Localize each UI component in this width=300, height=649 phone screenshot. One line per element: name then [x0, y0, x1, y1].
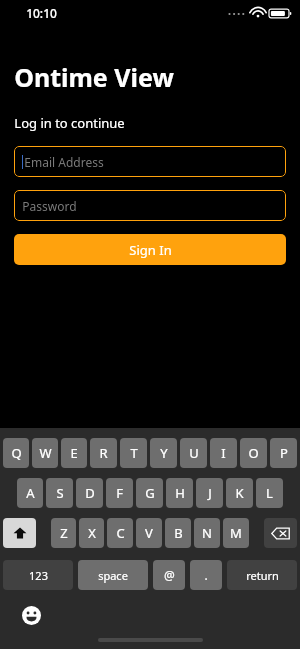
staticText: F [116, 484, 123, 502]
button[interactable]: F [106, 478, 133, 508]
staticText: Q [11, 444, 22, 462]
staticText: R [99, 444, 108, 462]
button[interactable]: V [136, 518, 162, 548]
staticText: W [39, 444, 52, 462]
button[interactable]: Password [14, 190, 286, 221]
button[interactable]: C [107, 518, 133, 548]
staticText: H [175, 484, 185, 502]
staticText: S [56, 484, 64, 502]
staticText: X [88, 524, 96, 542]
staticText: T [130, 444, 138, 462]
button[interactable]: S [46, 478, 73, 508]
staticText: Z [60, 524, 68, 542]
staticText: A [26, 484, 35, 502]
button[interactable]: B [165, 518, 191, 548]
button[interactable]: A [17, 478, 43, 508]
staticText: G [145, 484, 155, 502]
button[interactable]: Sign In [14, 234, 286, 265]
staticText: 123 [29, 568, 48, 583]
staticText: space [98, 568, 128, 583]
staticText: C [116, 524, 125, 542]
staticText: M [230, 524, 242, 542]
button[interactable]: H [166, 478, 193, 508]
button[interactable]: I [210, 438, 237, 468]
staticText: Y [160, 444, 168, 462]
button[interactable]: Z [51, 518, 76, 548]
button[interactable]: G [136, 478, 163, 508]
button[interactable]: E [61, 438, 87, 468]
staticText: E [70, 444, 78, 462]
button[interactable]: Emoji keyboard [22, 606, 41, 625]
button[interactable]: X [79, 518, 104, 548]
button[interactable]: D [76, 478, 103, 508]
staticText: Log in to continue [14, 114, 125, 132]
staticText: Password [22, 198, 77, 214]
button[interactable]: U [180, 438, 207, 468]
button[interactable]: Backspace [264, 518, 297, 548]
button[interactable]: Y [150, 438, 177, 468]
button[interactable]: Shift [3, 518, 36, 548]
staticText: O [248, 444, 259, 462]
staticText: N [202, 524, 212, 542]
staticText: J [208, 484, 212, 502]
button[interactable]: K [226, 478, 253, 508]
button[interactable]: N [194, 518, 220, 548]
staticText: 10:10 [26, 5, 57, 21]
button[interactable]: @ [153, 560, 185, 590]
staticText: U [189, 444, 199, 462]
button[interactable]: 123 [3, 560, 73, 590]
staticText: Ontime View [14, 60, 174, 94]
button[interactable]: space [78, 560, 148, 590]
staticText: K [235, 484, 244, 502]
button[interactable]: Email Address [14, 146, 286, 177]
button[interactable]: J [196, 478, 223, 508]
staticText: B [174, 524, 183, 542]
button[interactable]: O [240, 438, 267, 468]
button[interactable]: R [90, 438, 117, 468]
button[interactable]: P [270, 438, 297, 468]
button[interactable]: Q [3, 438, 29, 468]
button[interactable]: W [32, 438, 58, 468]
staticText: Email Address [24, 154, 104, 170]
staticText: L [266, 484, 273, 502]
staticText: V [145, 524, 153, 542]
staticText: return [246, 568, 279, 583]
staticText: I [221, 444, 226, 462]
staticText: P [280, 444, 288, 462]
button[interactable]: M [223, 518, 249, 548]
staticText: @ [164, 567, 175, 583]
staticText: . [204, 567, 208, 583]
staticText: Sign In [129, 241, 172, 259]
button[interactable]: L [256, 478, 283, 508]
button[interactable]: T [120, 438, 147, 468]
staticText: D [85, 484, 95, 502]
button[interactable]: return [227, 560, 297, 590]
button[interactable]: . [190, 560, 222, 590]
